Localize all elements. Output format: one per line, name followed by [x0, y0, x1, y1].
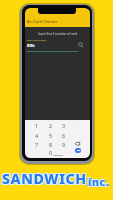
staticText: 4: [35, 132, 39, 138]
button[interactable]: ,: [33, 149, 41, 155]
staticText: inc.: [88, 174, 110, 188]
button[interactable]: 6: [60, 132, 68, 138]
staticText: SANDWICH: [1, 168, 86, 187]
staticText: SANDWICH: [1, 170, 86, 189]
staticText: inc.: [88, 174, 110, 188]
staticText: SANDWICH: [1, 170, 86, 189]
staticText: SANDWICH: [3, 168, 88, 187]
staticText: inc.: [89, 175, 111, 189]
staticText: 8: [49, 141, 53, 147]
staticText: inc.: [88, 175, 110, 189]
staticText: .: [64, 150, 65, 154]
staticText: SANDWICH: [1, 168, 86, 187]
staticText: 5: [49, 132, 53, 138]
button[interactable]: 0: [47, 149, 55, 155]
button[interactable]: [75, 148, 81, 153]
staticText: SANDWICH: [3, 168, 88, 187]
staticText: inc.: [86, 175, 108, 189]
staticText: SANDWICH: [2, 168, 87, 187]
staticText: SANDWICH: [2, 169, 87, 188]
staticText: inc.: [88, 174, 110, 188]
button[interactable]: 2: [47, 122, 55, 128]
staticText: Bin Card Checker: [27, 19, 58, 24]
button[interactable]: 3: [60, 122, 68, 128]
staticText: SANDWICH: [3, 169, 88, 188]
staticText: ,: [37, 150, 38, 154]
staticText: inc.: [87, 176, 109, 190]
staticText: SANDWICH: [1, 169, 86, 188]
staticText: inc.: [88, 176, 110, 190]
staticText: 2: [49, 122, 53, 128]
staticText: inc.: [87, 174, 109, 188]
button[interactable]: 8: [47, 141, 55, 147]
staticText: inc.: [88, 176, 110, 190]
staticText: inc.: [87, 176, 109, 190]
button[interactable]: -: [73, 122, 81, 128]
button[interactable]: 4: [33, 132, 41, 138]
staticText: SANDWICH: [2, 170, 87, 189]
button[interactable]: [78, 42, 84, 48]
staticText: 1: [35, 122, 39, 128]
staticText: -: [76, 123, 78, 127]
staticText: 7: [35, 141, 39, 147]
staticText: Input first 6 number of card: [38, 32, 78, 36]
staticText: 3: [62, 122, 66, 128]
staticText: 9: [62, 141, 66, 147]
staticText: SANDWICH: [3, 170, 88, 189]
button[interactable]: 9: [60, 141, 68, 147]
button[interactable]: 7: [33, 141, 41, 147]
staticText: SANDWICH: [1, 169, 86, 188]
staticText: 0: [49, 149, 53, 155]
staticText: inc.: [88, 175, 110, 189]
staticText: inc.: [88, 176, 110, 190]
button[interactable]: 5: [47, 132, 55, 138]
staticText: SANDWICH: [3, 169, 88, 188]
staticText: BIN:: [27, 43, 35, 48]
button[interactable]: 1: [33, 122, 41, 128]
staticText: SANDWICH: [2, 168, 87, 187]
button[interactable]: BIN:: [25, 41, 90, 53]
staticText: inc.: [88, 174, 110, 188]
staticText: SANDWICH: [3, 170, 88, 189]
button[interactable]: [75, 142, 80, 145]
staticText: Input card number: [27, 39, 47, 42]
staticText: inc.: [88, 176, 110, 190]
staticText: inc.: [87, 174, 109, 188]
staticText: 6: [62, 132, 66, 138]
staticText: inc.: [87, 175, 109, 189]
staticText: SANDWICH: [2, 170, 87, 189]
